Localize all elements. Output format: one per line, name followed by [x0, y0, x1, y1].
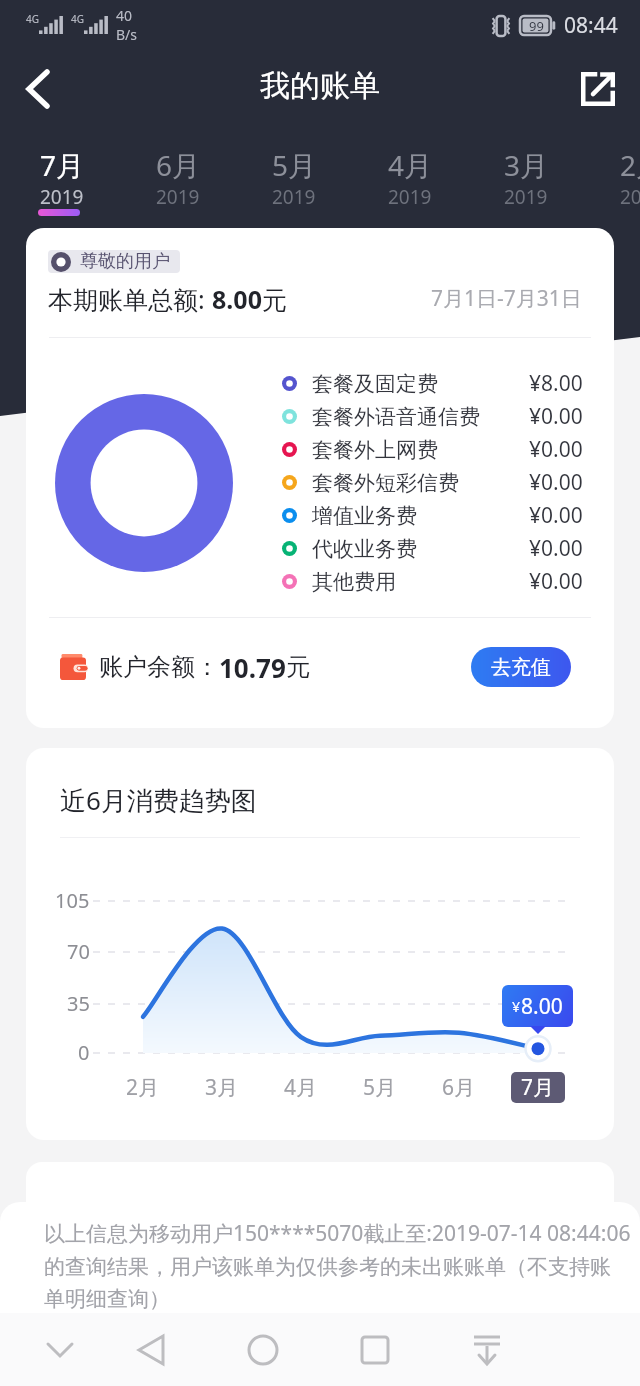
- staticText: 2019: [620, 184, 640, 210]
- staticText: 4月: [388, 146, 433, 184]
- button[interactable]: 3月: [498, 128, 614, 224]
- staticText: 6月: [442, 1073, 476, 1102]
- staticText: 2019: [272, 184, 316, 210]
- staticText: 代收业务费: [312, 536, 417, 562]
- button[interactable]: 7月: [34, 128, 150, 224]
- staticText: 10.79: [219, 650, 286, 685]
- button[interactable]: Share: [566, 57, 630, 121]
- button[interactable]: 去充值: [471, 647, 571, 687]
- staticText: 本期账单总额:: [48, 282, 212, 316]
- staticText: 35: [67, 990, 90, 1017]
- button[interactable]: Back: [6, 57, 70, 121]
- staticText: 08:44: [564, 11, 618, 40]
- staticText: 以上信息为移动用户150****5070截止至:2019-07-14 08:44…: [44, 1219, 631, 1312]
- staticText: 99: [529, 17, 544, 35]
- staticText: 2019: [40, 184, 84, 210]
- staticText: 我的账单: [260, 67, 380, 105]
- staticText: 2019: [504, 184, 548, 210]
- staticText: 0: [78, 1039, 90, 1066]
- staticText: ¥0.00: [529, 501, 583, 530]
- button[interactable]: 2月: [614, 128, 640, 224]
- staticText: 去充值: [491, 655, 551, 680]
- staticText: 3月: [205, 1073, 239, 1102]
- button[interactable]: 7月: [511, 1072, 565, 1103]
- staticText: 105: [55, 887, 90, 914]
- staticText: 元: [262, 285, 287, 316]
- staticText: 套餐外语音通信费: [312, 404, 480, 430]
- staticText: 40: [116, 6, 133, 25]
- staticText: ¥8.00: [529, 369, 583, 398]
- button[interactable]: Back: [121, 1319, 183, 1381]
- staticText: ¥0.00: [529, 402, 583, 431]
- staticText: 套餐外上网费: [312, 437, 438, 463]
- staticText: 2月: [620, 146, 640, 184]
- staticText: ¥: [512, 997, 521, 1016]
- staticText: 4月: [284, 1073, 318, 1102]
- staticText: 2019: [156, 184, 200, 210]
- staticText: 8.00: [212, 282, 262, 316]
- staticText: 套餐及固定费: [312, 371, 438, 397]
- staticText: ¥0.00: [529, 468, 583, 497]
- staticText: 2019: [388, 184, 432, 210]
- button[interactable]: 6月: [150, 128, 266, 224]
- staticText: 7月: [40, 146, 85, 184]
- button[interactable]: Recents: [344, 1319, 406, 1381]
- staticText: 8.00: [521, 992, 563, 1021]
- staticText: 增值业务费: [312, 503, 417, 529]
- button[interactable]: Home: [232, 1319, 294, 1381]
- staticText: ¥0.00: [529, 435, 583, 464]
- staticText: 2月: [126, 1073, 160, 1102]
- staticText: 其他费用: [312, 569, 396, 595]
- button[interactable]: Hide: [29, 1319, 91, 1381]
- staticText: ¥0.00: [529, 567, 583, 596]
- staticText: 70: [67, 938, 90, 965]
- staticText: 3月: [504, 146, 549, 184]
- button[interactable]: 5月: [266, 128, 382, 224]
- button[interactable]: 4月: [382, 128, 498, 224]
- staticText: 5月: [272, 146, 317, 184]
- staticText: 账户余额：: [99, 652, 219, 682]
- staticText: 7月1日-7月31日: [431, 284, 582, 313]
- staticText: 元: [286, 652, 310, 682]
- staticText: B/s: [116, 25, 138, 44]
- staticText: 4G: [26, 12, 39, 26]
- staticText: 5月: [363, 1073, 397, 1102]
- button[interactable]: Collapse: [456, 1319, 518, 1381]
- staticText: ¥0.00: [529, 534, 583, 563]
- staticText: 尊敬的用户: [80, 250, 170, 273]
- staticText: 6月: [156, 146, 201, 184]
- staticText: 近6月消费趋势图: [60, 782, 257, 818]
- staticText: 7月: [521, 1073, 555, 1102]
- staticText: 4G: [71, 12, 84, 26]
- staticText: 套餐外短彩信费: [312, 470, 459, 496]
